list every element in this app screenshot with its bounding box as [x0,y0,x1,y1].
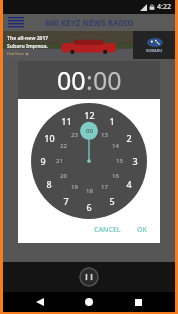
button[interactable]: Open navigation menu [6,15,26,30]
staticText: 19 [71,183,78,191]
button[interactable]: Home [77,293,101,311]
staticText: 3 [132,155,138,167]
staticText: 9 [40,155,46,167]
staticText: 4 [126,178,132,190]
staticText: 14 [112,142,119,150]
button[interactable]: Recent apps [126,293,150,311]
staticText: 23 [71,131,78,139]
staticText: 660 KEYZ NEWS RADIO [45,17,134,28]
button[interactable]: OK [132,221,152,239]
button[interactable]: Back [28,293,52,311]
staticText: 7 [63,195,69,207]
staticText: 5 [109,195,115,207]
staticText: SUBARU [146,48,163,53]
button[interactable]: 00 [57,63,86,97]
staticText: 11 [61,115,72,127]
staticText: Find Yours ▶ [7,51,29,56]
button[interactable]: Pause [79,267,99,287]
staticText: 20 [60,172,67,180]
staticText: 21 [56,157,63,165]
staticText: 15 [116,157,123,165]
staticText: The all-new 2017 [7,35,49,42]
staticText: : [86,63,93,97]
staticText: OK [137,225,147,235]
button[interactable]: CANCEL [89,221,126,239]
staticText: 6 [86,201,92,213]
staticText: 10 [44,132,55,144]
staticText: CANCEL [94,225,121,235]
staticText: 12 [84,109,95,121]
button[interactable]: Hour selector dial [31,103,147,219]
staticText: Subaru Impreza. [7,43,48,50]
staticText: 2 [126,132,132,144]
staticText: 8 [46,178,52,190]
staticText: 13 [101,131,108,139]
staticText: 16 [112,172,119,180]
staticText: 18 [86,187,93,195]
staticText: 17 [101,183,108,191]
button[interactable]: Subaru Impreza advertisement [3,31,175,59]
button[interactable]: 00 [93,63,122,97]
staticText: 4:22 [157,2,171,12]
staticText: 00 [86,127,93,135]
staticText: 1 [109,115,115,127]
staticText: 22 [60,142,67,150]
